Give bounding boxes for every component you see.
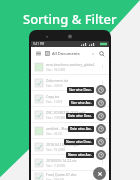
button[interactable]: Menu [34,49,42,57]
button[interactable]: More options [99,173,106,180]
button[interactable]: Close [93,167,106,180]
button[interactable]: Name wise Desc. [64,137,106,147]
staticText: Size : 7.03 MB [46,116,66,120]
staticText: Size : 19.4 MB [46,148,66,152]
button[interactable]: Name wise Asc. [66,150,106,160]
staticText: Name wise Asc. [68,153,92,157]
staticText: Size wise Asc. [71,101,92,105]
staticText: 20180216.14.22.xls [46,158,77,163]
button[interactable]: Size wise Asc. [69,98,106,108]
staticText: Name wise Desc. [66,140,92,144]
button[interactable]: More options [99,143,106,150]
button[interactable]: Size wise Desc. [67,85,106,95]
button[interactable]: 20180216.14.22.xls [31,155,109,170]
button[interactable]: msa-brochure-sanitary_global-V4.3.indd [31,59,109,74]
staticText: Date wise Asc. [70,127,92,131]
button[interactable]: Copy.txt [31,91,109,106]
staticText: Size : 1.02 K [46,100,63,104]
staticText: 9:41 PM [33,42,45,46]
button[interactable]: Date wise Desc. [66,111,106,121]
staticText: Sorting & Filter [23,10,117,28]
staticText: Date wise Desc. [68,114,92,118]
button[interactable]: Dokument.txt [31,75,109,90]
staticText: untitled - May 13.doc [46,126,80,131]
button[interactable]: 2018-03-15_0128.pdf [31,139,109,154]
button[interactable]: More options [99,63,106,70]
staticText: 2018-03-15_0128.pdf [46,142,80,147]
button[interactable]: More options [99,111,106,118]
button[interactable]: More options [99,127,106,134]
button[interactable]: All Documents [45,51,95,56]
button[interactable]: DSC-20180218_0023.pdf [31,107,109,122]
staticText: Size : 18.6 MB [46,68,66,72]
staticText: Size : 158.0 K [46,178,65,180]
staticText: All Documents [52,51,80,56]
staticText: DSC-20180218_0023.pdf [46,110,85,115]
staticText: Size : 24.0 K [46,132,63,136]
staticText: Copy.txt [46,94,59,99]
staticText: Size wise Desc. [69,88,92,92]
button[interactable]: Final_Quote-07.doc [31,171,109,180]
staticText: msa-brochure-sanitary_global-V4.3.indd [46,62,99,67]
button[interactable]: Date wise Asc. [68,124,106,134]
staticText: Final_Quote-07.doc [46,172,77,177]
staticText: Size : 7.23 MB [46,164,66,168]
button[interactable]: Search [97,49,106,58]
button[interactable]: More options [99,79,106,86]
button[interactable]: More options [99,159,106,166]
button[interactable]: untitled - May 13.doc [31,123,109,138]
staticText: Size : 2.06 K [46,84,63,88]
button[interactable]: More options [99,95,106,102]
staticText: Dokument.txt [46,78,68,83]
